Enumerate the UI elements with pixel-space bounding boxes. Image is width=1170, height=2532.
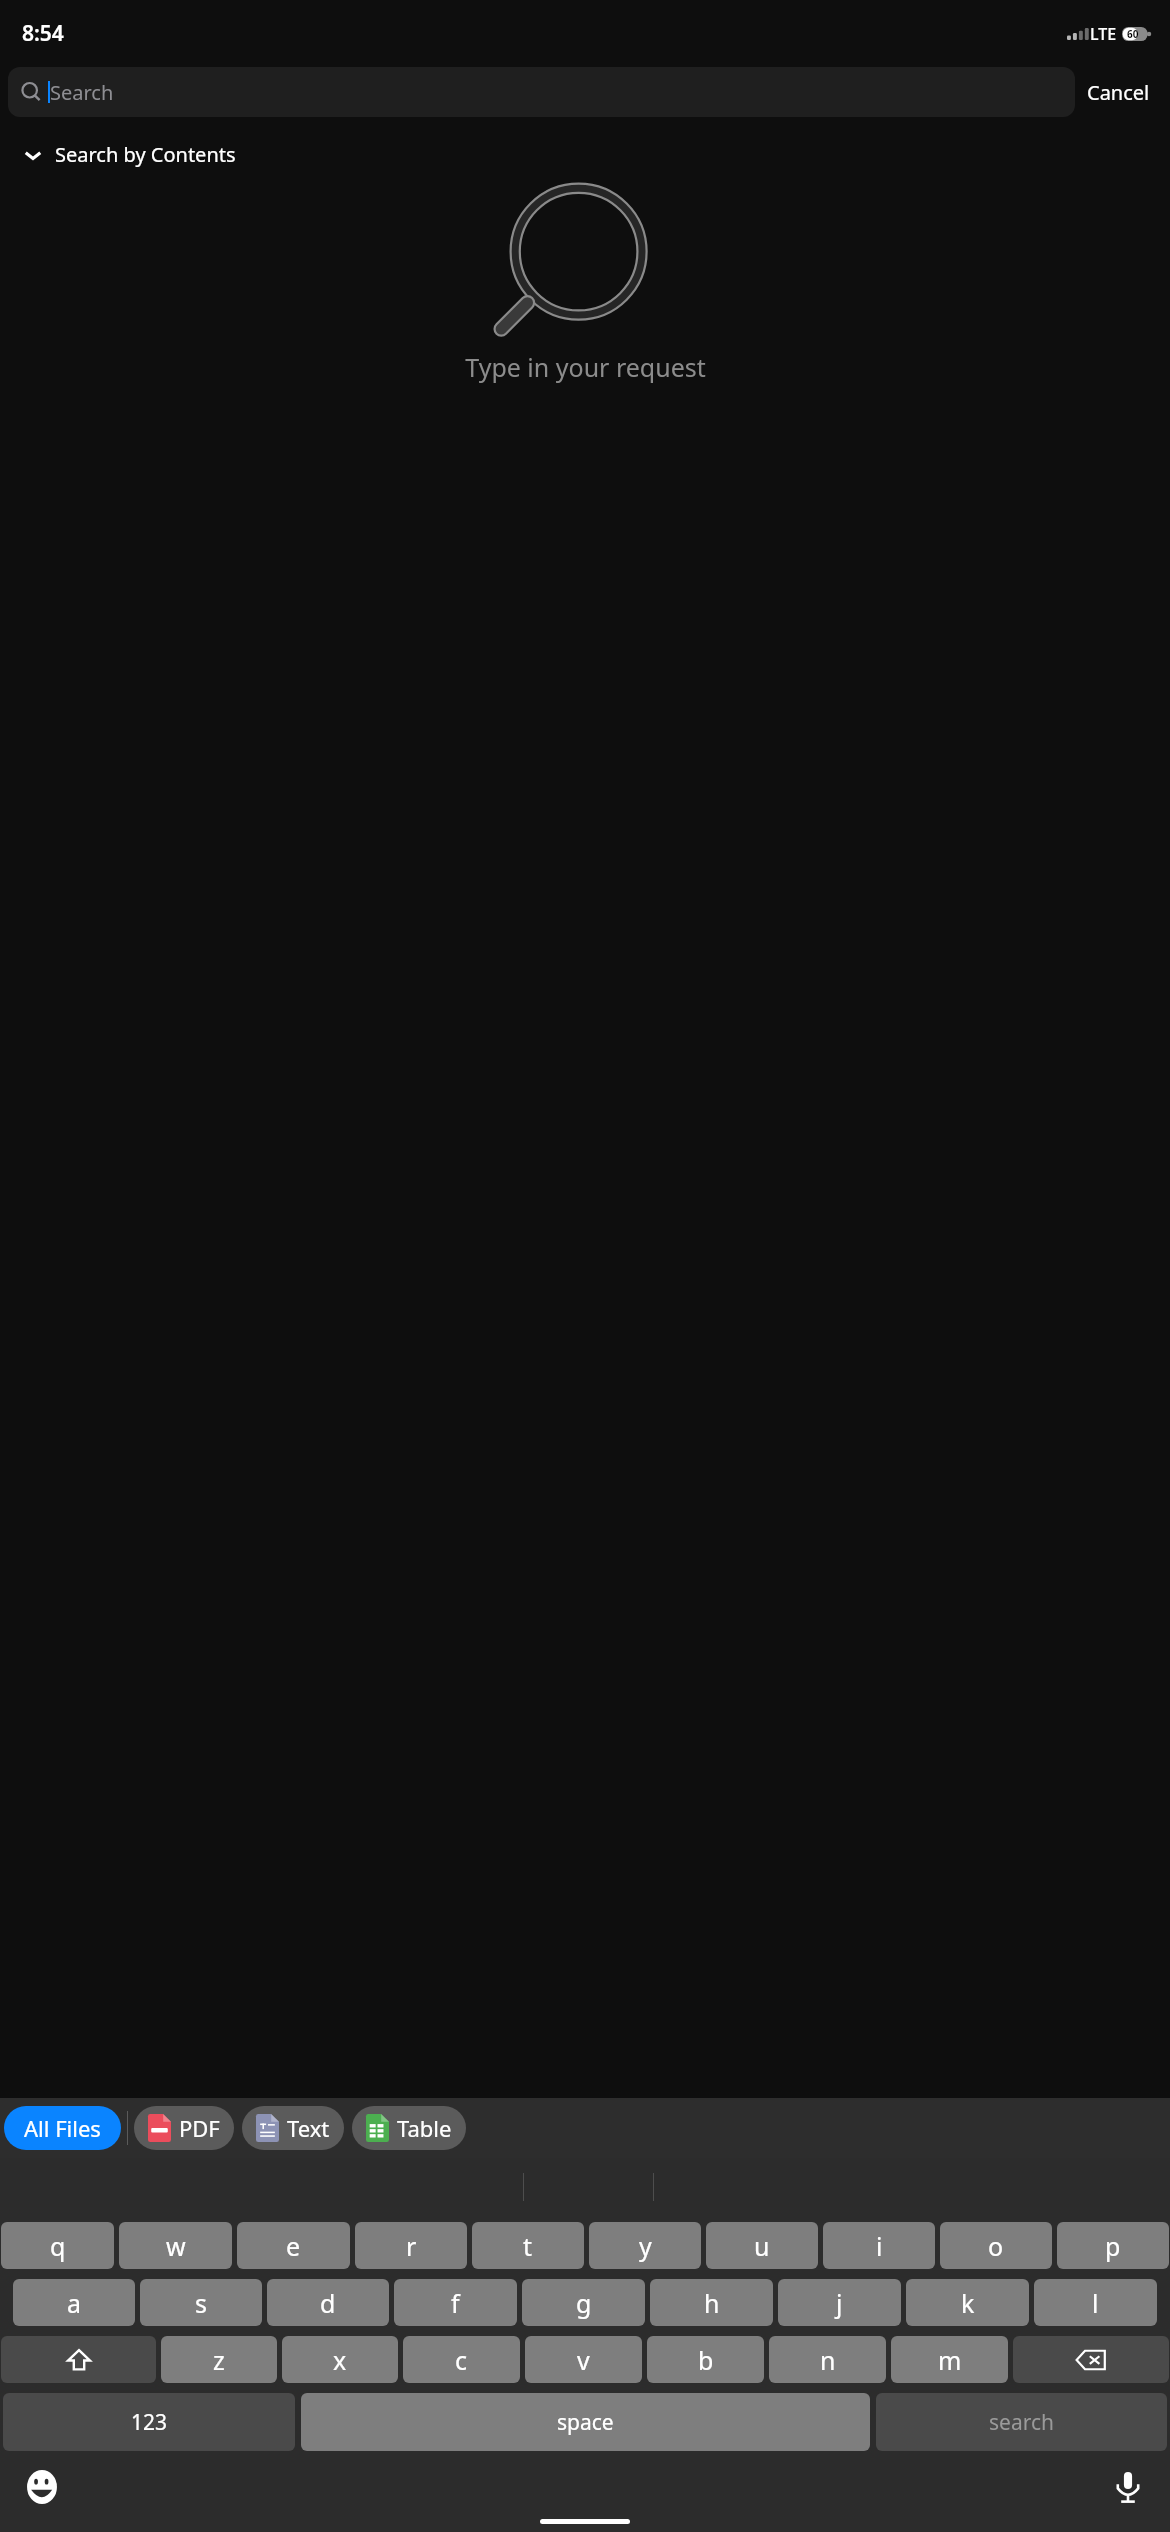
staticText: g — [576, 2286, 592, 2320]
button[interactable]: s — [140, 2279, 262, 2326]
button[interactable]: l — [1034, 2279, 1157, 2326]
staticText: n — [820, 2343, 836, 2377]
staticText: w — [166, 2229, 186, 2263]
staticText: j — [836, 2286, 843, 2320]
staticText: LTE — [1090, 23, 1117, 45]
staticText: p — [1105, 2229, 1121, 2263]
staticText: u — [754, 2229, 770, 2263]
button[interactable]: y — [589, 2222, 701, 2269]
staticText: k — [961, 2286, 975, 2320]
staticText: Search by Contents — [55, 141, 236, 168]
staticText: s — [195, 2286, 207, 2320]
button[interactable]: b — [647, 2336, 764, 2383]
staticText: i — [876, 2229, 883, 2263]
button[interactable]: o — [940, 2222, 1052, 2269]
button[interactable]: j — [778, 2279, 901, 2326]
staticText: space — [557, 2408, 614, 2437]
button[interactable]: search — [876, 2393, 1167, 2451]
staticText: All Files — [24, 2113, 101, 2143]
staticText: x — [333, 2343, 347, 2377]
staticText: Type in your request — [465, 350, 706, 384]
staticText: search — [989, 2408, 1054, 2437]
button[interactable]: space — [301, 2393, 870, 2451]
button[interactable]: Backspace — [1013, 2336, 1169, 2383]
button[interactable]: Table — [352, 2106, 466, 2150]
staticText: Table — [397, 2113, 452, 2143]
button[interactable]: g — [522, 2279, 645, 2326]
button[interactable]: Cancel — [1075, 71, 1162, 114]
button[interactable]: Search — [8, 67, 1075, 117]
button[interactable]: u — [706, 2222, 818, 2269]
button[interactable]: k — [906, 2279, 1029, 2326]
staticText: 123 — [131, 2408, 168, 2437]
button[interactable]: f — [394, 2279, 517, 2326]
button[interactable]: h — [650, 2279, 773, 2326]
button[interactable]: c — [403, 2336, 520, 2383]
button[interactable]: x — [282, 2336, 398, 2383]
staticText: h — [704, 2286, 720, 2320]
staticText: m — [938, 2343, 962, 2377]
button[interactable]: m — [891, 2336, 1008, 2383]
staticText: d — [320, 2286, 336, 2320]
staticText: PDF — [179, 2113, 220, 2143]
button[interactable]: q — [1, 2222, 114, 2269]
button[interactable]: 123 — [3, 2393, 295, 2451]
staticText: Search — [50, 79, 114, 106]
staticText: v — [577, 2343, 590, 2377]
button[interactable]: Shift — [1, 2336, 156, 2383]
staticText: l — [1092, 2286, 1099, 2320]
button[interactable]: a — [13, 2279, 135, 2326]
staticText: Text — [287, 2113, 330, 2143]
button[interactable]: t — [472, 2222, 584, 2269]
button[interactable]: Text — [242, 2106, 344, 2150]
button[interactable]: w — [119, 2222, 232, 2269]
staticText: f — [451, 2286, 460, 2320]
staticText: 60 — [1127, 27, 1139, 41]
button[interactable]: All Files — [4, 2106, 121, 2150]
button[interactable]: Dictation — [1106, 2465, 1150, 2509]
staticText: a — [67, 2286, 82, 2320]
button[interactable]: v — [525, 2336, 642, 2383]
staticText: c — [455, 2343, 468, 2377]
button[interactable]: d — [267, 2279, 389, 2326]
button[interactable]: p — [1057, 2222, 1169, 2269]
staticText: r — [406, 2229, 417, 2263]
button[interactable]: z — [161, 2336, 277, 2383]
button[interactable]: i — [823, 2222, 935, 2269]
staticText: y — [639, 2229, 652, 2263]
staticText: e — [286, 2229, 301, 2263]
button[interactable]: r — [355, 2222, 467, 2269]
staticText: 8:54 — [22, 19, 64, 48]
button[interactable]: e — [237, 2222, 350, 2269]
staticText: b — [698, 2343, 714, 2377]
button[interactable]: Search by Contents — [16, 133, 242, 176]
staticText: q — [50, 2229, 66, 2263]
button[interactable]: PDF — [134, 2106, 234, 2150]
button[interactable]: Emoji — [20, 2465, 64, 2509]
staticText: t — [523, 2229, 533, 2263]
staticText: Cancel — [1087, 79, 1150, 106]
staticText: o — [988, 2229, 1004, 2263]
staticText: z — [213, 2343, 225, 2377]
button[interactable]: n — [769, 2336, 886, 2383]
